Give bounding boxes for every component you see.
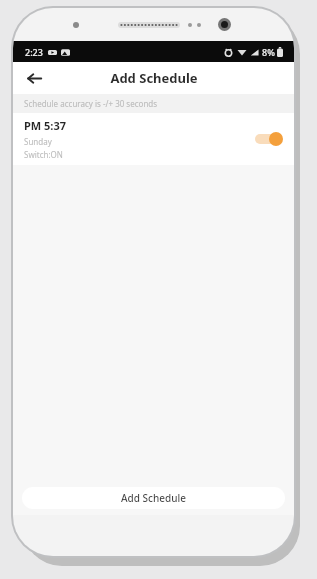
staticText: 8% [262,46,275,58]
staticText: Switch:ON [24,149,63,160]
staticText: PM 5:37 [24,118,67,133]
staticText: Add Schedule [121,491,186,505]
staticText: Sunday [24,136,52,147]
button[interactable]: PM 5:37 [13,113,294,165]
button[interactable]: Add Schedule [22,487,285,509]
staticText: Add Schedule [110,69,198,87]
staticText: Schedule accuracy is -/+ 30 seconds [24,98,158,109]
button[interactable]: Back [19,63,49,93]
button[interactable]: Schedule enabled toggle [253,130,283,148]
staticText: 2:23 [25,46,43,58]
